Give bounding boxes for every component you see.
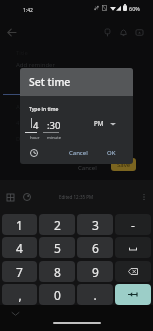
button[interactable]: , (2, 284, 37, 305)
button[interactable]: Save (111, 158, 136, 171)
button[interactable]: Remind me (116, 25, 130, 39)
staticText: 1 (16, 217, 23, 233)
button[interactable]: 8 (39, 261, 75, 282)
staticText: , (18, 287, 22, 303)
button[interactable]: 6 (77, 237, 113, 258)
button[interactable]: 5 (39, 237, 75, 258)
staticText: . (93, 287, 97, 303)
staticText: 8 (54, 264, 61, 280)
staticText: 1:42 (23, 7, 33, 14)
staticText: 7 (16, 264, 23, 280)
button[interactable]: Back (3, 24, 19, 40)
button[interactable]: AM PM (110, 122, 116, 126)
button[interactable]: OK (104, 147, 119, 159)
staticText: minute (47, 135, 62, 141)
button[interactable]: Pin (100, 25, 114, 39)
button[interactable]: Switch to clock mode (28, 147, 39, 158)
staticText: 6 (92, 240, 99, 256)
staticText: 4 (33, 119, 39, 132)
button[interactable]: 2 (39, 214, 75, 235)
staticText: Add a date (16, 103, 47, 111)
button[interactable]: 1 (2, 214, 37, 235)
button[interactable]: Archive (132, 25, 146, 39)
button[interactable] (115, 237, 151, 258)
staticText: 4:30 PM (16, 119, 39, 127)
staticText: 9 (92, 264, 99, 280)
button[interactable] (115, 284, 151, 305)
button[interactable]: More options (139, 192, 149, 202)
staticText: hour (30, 135, 40, 141)
staticText: 5 (54, 240, 61, 256)
button[interactable]: 4 (2, 237, 37, 258)
button[interactable]: Hide keyboard (10, 308, 20, 318)
staticText: 60% (129, 5, 140, 12)
staticText: 4 (16, 240, 23, 256)
staticText: Edited 12:35 PM (59, 194, 94, 200)
staticText: - (131, 217, 135, 233)
button[interactable] (115, 261, 151, 282)
staticText: Does not repeat (16, 135, 62, 143)
staticText: OK (107, 149, 116, 157)
staticText: 2 (54, 217, 61, 233)
staticText: 3 (92, 217, 99, 233)
button[interactable]: 0 (39, 284, 75, 305)
button[interactable]: . (77, 284, 113, 305)
staticText: Add reminder (16, 61, 55, 69)
button[interactable]: Theme (22, 192, 32, 202)
button[interactable]: Keyboard layout (5, 192, 15, 202)
button[interactable]: - (115, 214, 151, 235)
button[interactable]: 3 (77, 214, 113, 235)
staticText: PM (94, 119, 104, 127)
staticText: Cancel (69, 149, 88, 157)
button[interactable]: 7 (2, 261, 37, 282)
staticText: Save (117, 161, 131, 169)
staticText: Type in time (29, 106, 59, 113)
button[interactable]: 9 (77, 261, 113, 282)
staticText: :30 (47, 119, 61, 132)
staticText: Cancel (78, 164, 97, 172)
button[interactable]: Cancel (66, 147, 91, 159)
staticText: Set time (29, 75, 71, 89)
staticText: 0 (54, 287, 61, 303)
